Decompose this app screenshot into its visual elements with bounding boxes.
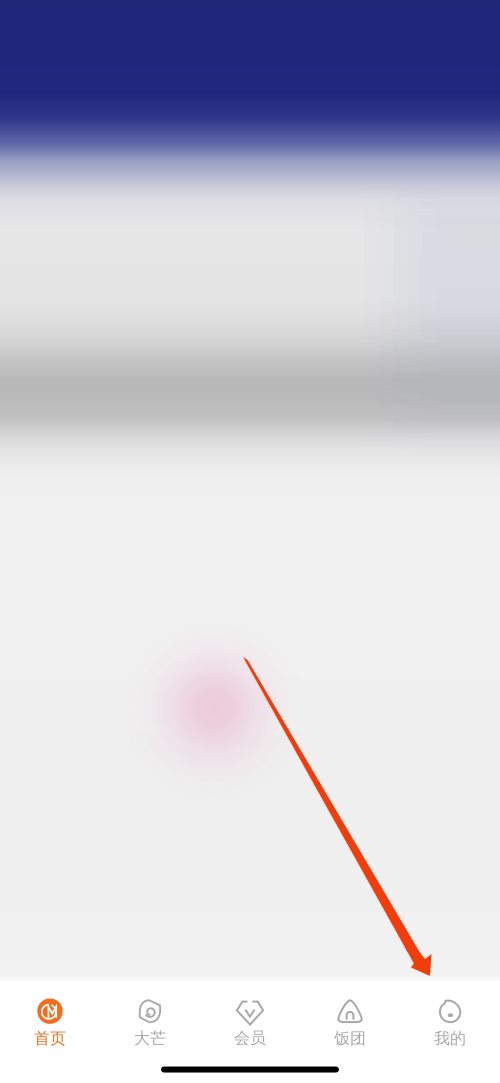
button[interactable]: 首页 <box>0 979 100 1052</box>
button[interactable]: 会员 <box>200 979 300 1052</box>
button[interactable]: 饭团 <box>300 979 400 1052</box>
staticText: 饭团 <box>334 1029 366 1048</box>
staticText: 首页 <box>34 1029 66 1048</box>
staticText: 会员 <box>234 1028 266 1048</box>
staticText: 我的 <box>434 1029 466 1048</box>
button[interactable]: 大芒 <box>100 979 200 1052</box>
staticText: 大芒 <box>134 1029 166 1048</box>
button[interactable]: 我的 <box>400 979 500 1052</box>
